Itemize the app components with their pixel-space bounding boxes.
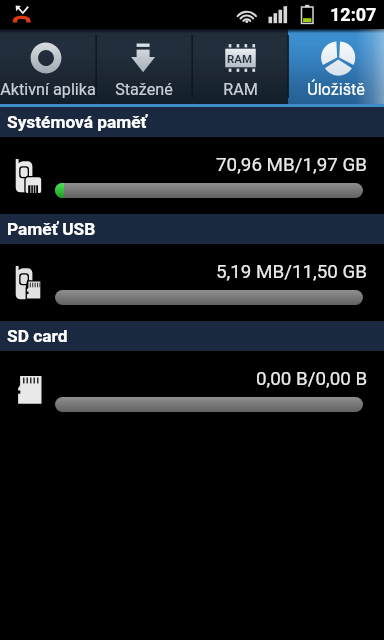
button[interactable]: 70,96 MB/1,97 GB	[0, 137, 384, 214]
staticText: 12:07	[330, 4, 377, 25]
button[interactable]: 5,19 MB/11,50 GB	[0, 244, 384, 321]
staticText: RAM	[223, 80, 258, 99]
staticText: 5,19 MB/11,50 GB	[216, 261, 368, 283]
button[interactable]: RAM	[192, 29, 288, 104]
staticText: Úložiště	[307, 80, 365, 99]
button[interactable]: Úložiště	[288, 29, 384, 104]
staticText: Stažené	[115, 80, 173, 99]
staticText: Systémová paměť	[7, 112, 147, 132]
staticText: SD card	[7, 326, 68, 346]
staticText: 0,00 B/0,00 B	[256, 368, 368, 390]
staticText: RAM	[227, 52, 253, 65]
button[interactable]: Stažené	[96, 29, 192, 104]
button[interactable]: 0,00 B/0,00 B	[0, 351, 384, 428]
button[interactable]: Aktivní aplikace	[0, 29, 96, 104]
staticText: Paměť USB	[7, 219, 96, 239]
staticText: Aktivní aplikace	[0, 80, 96, 99]
staticText: 70,96 MB/1,97 GB	[216, 154, 368, 176]
